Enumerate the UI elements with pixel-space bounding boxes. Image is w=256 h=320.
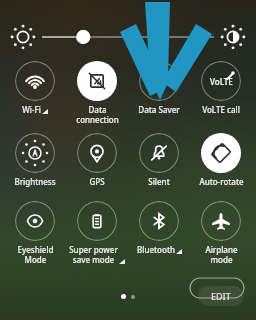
button[interactable]: Data connection <box>66 61 128 125</box>
button[interactable]: Super power save mode <box>66 201 128 265</box>
staticText: EDIT <box>211 290 231 302</box>
staticText: Super power save mode <box>69 244 118 265</box>
button[interactable]: Eyeshield Mode <box>4 201 66 265</box>
button[interactable]: Airplane mode <box>190 201 252 265</box>
button[interactable]: Brightness down <box>10 24 36 50</box>
button[interactable]: Auto-rotate <box>190 133 252 187</box>
staticText: VoLTE call <box>202 104 240 115</box>
staticText: Auto-rotate <box>199 176 244 187</box>
staticText: Silent <box>148 176 170 187</box>
button[interactable]: Silent <box>128 133 190 187</box>
button[interactable]: GPS <box>66 133 128 187</box>
button[interactable]: Bluetooth <box>128 201 190 255</box>
staticText: Data connection <box>76 104 119 125</box>
staticText: VoLTE <box>210 76 233 87</box>
button[interactable]: Wi-Fi <box>4 61 66 115</box>
staticText: GPS <box>89 176 105 187</box>
button[interactable]: VoLTE call <box>190 61 252 115</box>
button[interactable]: Brightness slider <box>42 24 214 50</box>
button[interactable]: Auto brightness <box>220 24 246 50</box>
button[interactable]: Data Saver <box>128 61 190 115</box>
staticText: Brightness <box>14 176 56 187</box>
button[interactable]: EDIT <box>198 286 244 306</box>
staticText: Wi-Fi <box>22 104 41 115</box>
staticText: Eyeshield Mode <box>17 244 54 265</box>
staticText: Data Saver <box>138 104 180 115</box>
button[interactable]: Brightness <box>4 133 66 187</box>
staticText: Bluetooth <box>137 244 175 255</box>
staticText: Airplane mode <box>205 244 238 265</box>
